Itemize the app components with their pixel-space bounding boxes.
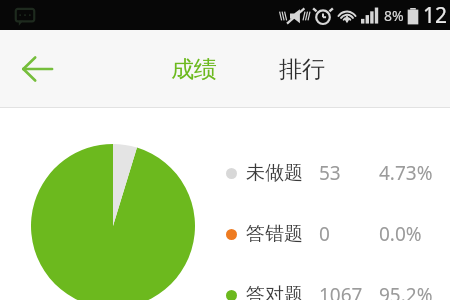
- button[interactable]: 排行: [268, 40, 336, 98]
- button[interactable]: Back: [10, 42, 64, 96]
- button[interactable]: 答错题: [226, 217, 450, 251]
- staticText: 4.73%: [379, 160, 433, 186]
- staticText: 53: [319, 160, 341, 186]
- staticText: 成绩: [171, 55, 217, 84]
- staticText: 0.0%: [379, 221, 422, 247]
- staticText: 排行: [279, 55, 325, 84]
- staticText: 答对题: [246, 283, 303, 300]
- staticText: 1067: [319, 282, 363, 300]
- button[interactable]: 答对题: [226, 278, 450, 300]
- staticText: 答错题: [246, 222, 303, 246]
- button[interactable]: 成绩: [160, 40, 228, 98]
- staticText: 8%: [384, 6, 404, 25]
- staticText: 12: [423, 1, 448, 30]
- staticText: 未做题: [246, 161, 303, 185]
- staticText: 95.2%: [379, 282, 433, 300]
- button[interactable]: 未做题: [226, 156, 450, 190]
- staticText: 0: [319, 221, 330, 247]
